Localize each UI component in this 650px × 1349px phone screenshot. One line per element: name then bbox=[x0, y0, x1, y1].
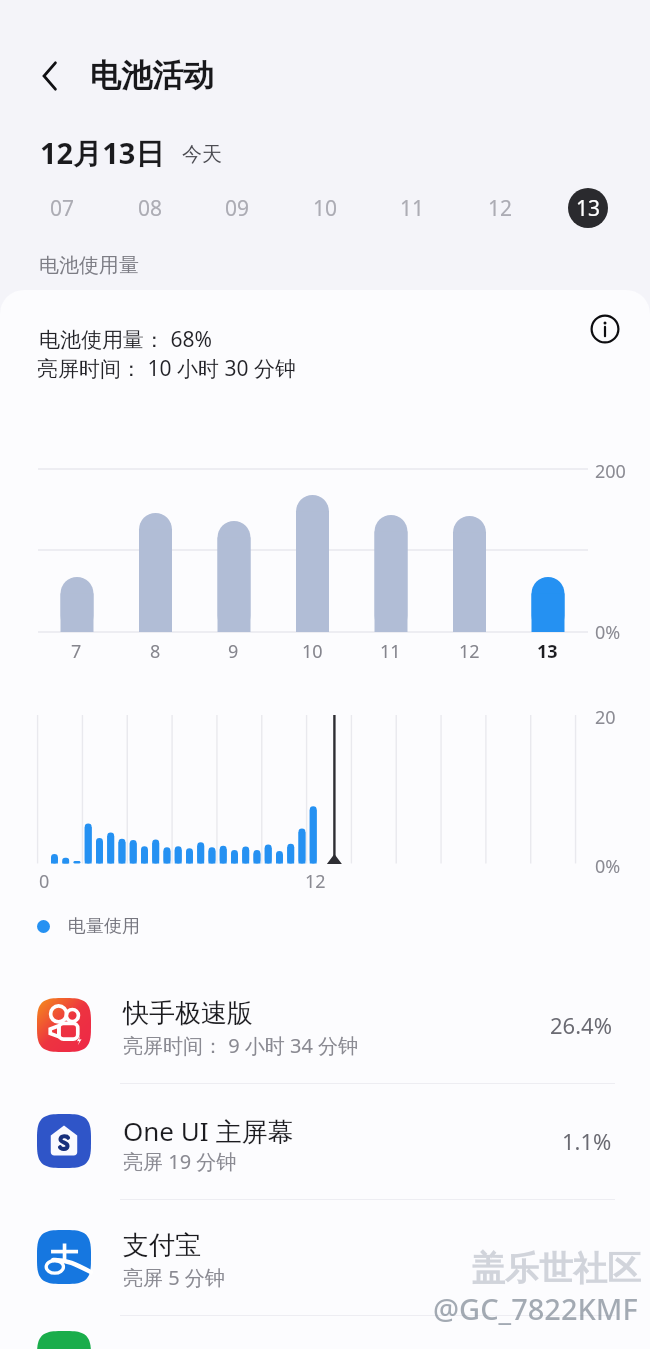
button[interactable]: Information bbox=[585, 309, 625, 349]
staticText: 亮屏 5 分钟 bbox=[123, 1264, 225, 1291]
staticText: 11 bbox=[400, 194, 425, 223]
staticText: 亮屏 19 分钟 bbox=[123, 1148, 237, 1175]
staticText: 0% bbox=[595, 620, 621, 645]
staticText: 亮屏时间： 9 小时 34 分钟 bbox=[123, 1032, 359, 1059]
staticText: 12 bbox=[488, 194, 513, 223]
staticText: 电池使用量 bbox=[39, 253, 139, 278]
staticText: 9 bbox=[228, 639, 239, 664]
staticText: 12 bbox=[459, 639, 480, 664]
staticText: 电池使用量： 68% bbox=[39, 325, 212, 354]
staticText: 13 bbox=[537, 639, 558, 664]
staticText: 07 bbox=[50, 194, 75, 223]
button[interactable]: Back bbox=[22, 48, 78, 104]
staticText: 电量使用 bbox=[68, 915, 140, 938]
button[interactable]: 快手极速版 bbox=[0, 967, 650, 1083]
staticText: 26.4% bbox=[550, 1010, 612, 1040]
staticText: 亮屏时间： 10 小时 30 分钟 bbox=[37, 354, 296, 383]
staticText: 盖乐世社区 bbox=[471, 1247, 641, 1290]
button[interactable]: One UI 主屏幕 bbox=[0, 1083, 650, 1199]
staticText: 20 bbox=[595, 705, 616, 730]
staticText: 电池活动 bbox=[90, 56, 214, 95]
staticText: 7 bbox=[71, 639, 82, 664]
staticText: 8 bbox=[150, 639, 161, 664]
button[interactable]: 12 bbox=[470, 186, 530, 230]
button[interactable]: 支付宝 bbox=[0, 1199, 650, 1315]
button[interactable]: 08 bbox=[120, 186, 180, 230]
staticText: 11 bbox=[380, 639, 401, 664]
staticText: 今天 bbox=[182, 142, 222, 167]
button[interactable]: 11 bbox=[382, 186, 442, 230]
staticText: 快手极速版 bbox=[123, 997, 253, 1030]
button[interactable]: 13 bbox=[558, 186, 618, 230]
staticText: 0 bbox=[39, 869, 50, 894]
staticText: 1.1% bbox=[562, 1126, 612, 1156]
staticText: One UI 主屏幕 bbox=[123, 1113, 294, 1149]
button[interactable]: 09 bbox=[207, 186, 267, 230]
staticText: 09 bbox=[225, 194, 250, 223]
staticText: 12 bbox=[305, 869, 326, 894]
staticText: 0% bbox=[595, 854, 621, 879]
button[interactable]: 07 bbox=[32, 186, 92, 230]
staticText: 10 bbox=[302, 639, 323, 664]
staticText: 08 bbox=[138, 194, 163, 223]
staticText: 13 bbox=[576, 194, 601, 223]
button[interactable]: 10 bbox=[295, 186, 355, 230]
staticText: 10 bbox=[313, 194, 338, 223]
staticText: 200 bbox=[595, 459, 626, 484]
staticText: 支付宝 bbox=[123, 1229, 201, 1262]
staticText: @GC_7822KMF bbox=[433, 1289, 638, 1328]
staticText: 12月13日 bbox=[40, 133, 165, 173]
